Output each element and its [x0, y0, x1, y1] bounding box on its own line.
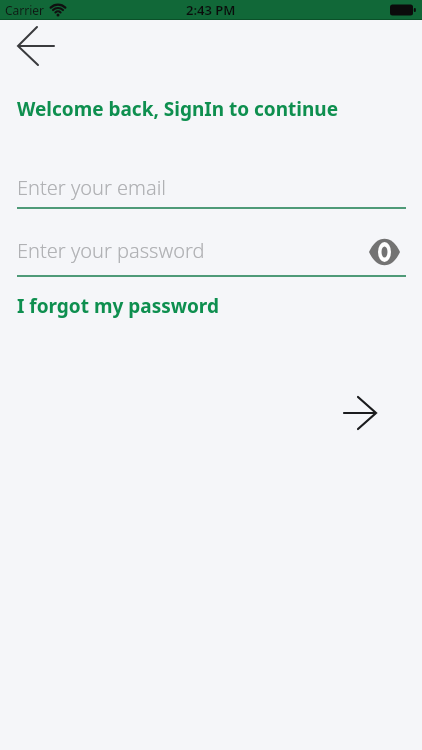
staticText: I forgot my password — [17, 293, 219, 319]
staticText: Welcome back, SignIn to continue — [17, 96, 339, 122]
button[interactable]: Enter your email — [0, 165, 422, 213]
button[interactable]: Enter your password — [0, 230, 422, 278]
button[interactable] — [362, 232, 406, 272]
button[interactable]: I forgot my password — [17, 290, 219, 319]
staticText: Enter your password — [17, 237, 205, 264]
staticText: Enter your email — [17, 174, 166, 201]
staticText: Carrier — [5, 2, 45, 18]
button[interactable] — [332, 385, 388, 441]
staticText: 2:43 PM — [186, 1, 236, 19]
button[interactable] — [10, 20, 62, 72]
